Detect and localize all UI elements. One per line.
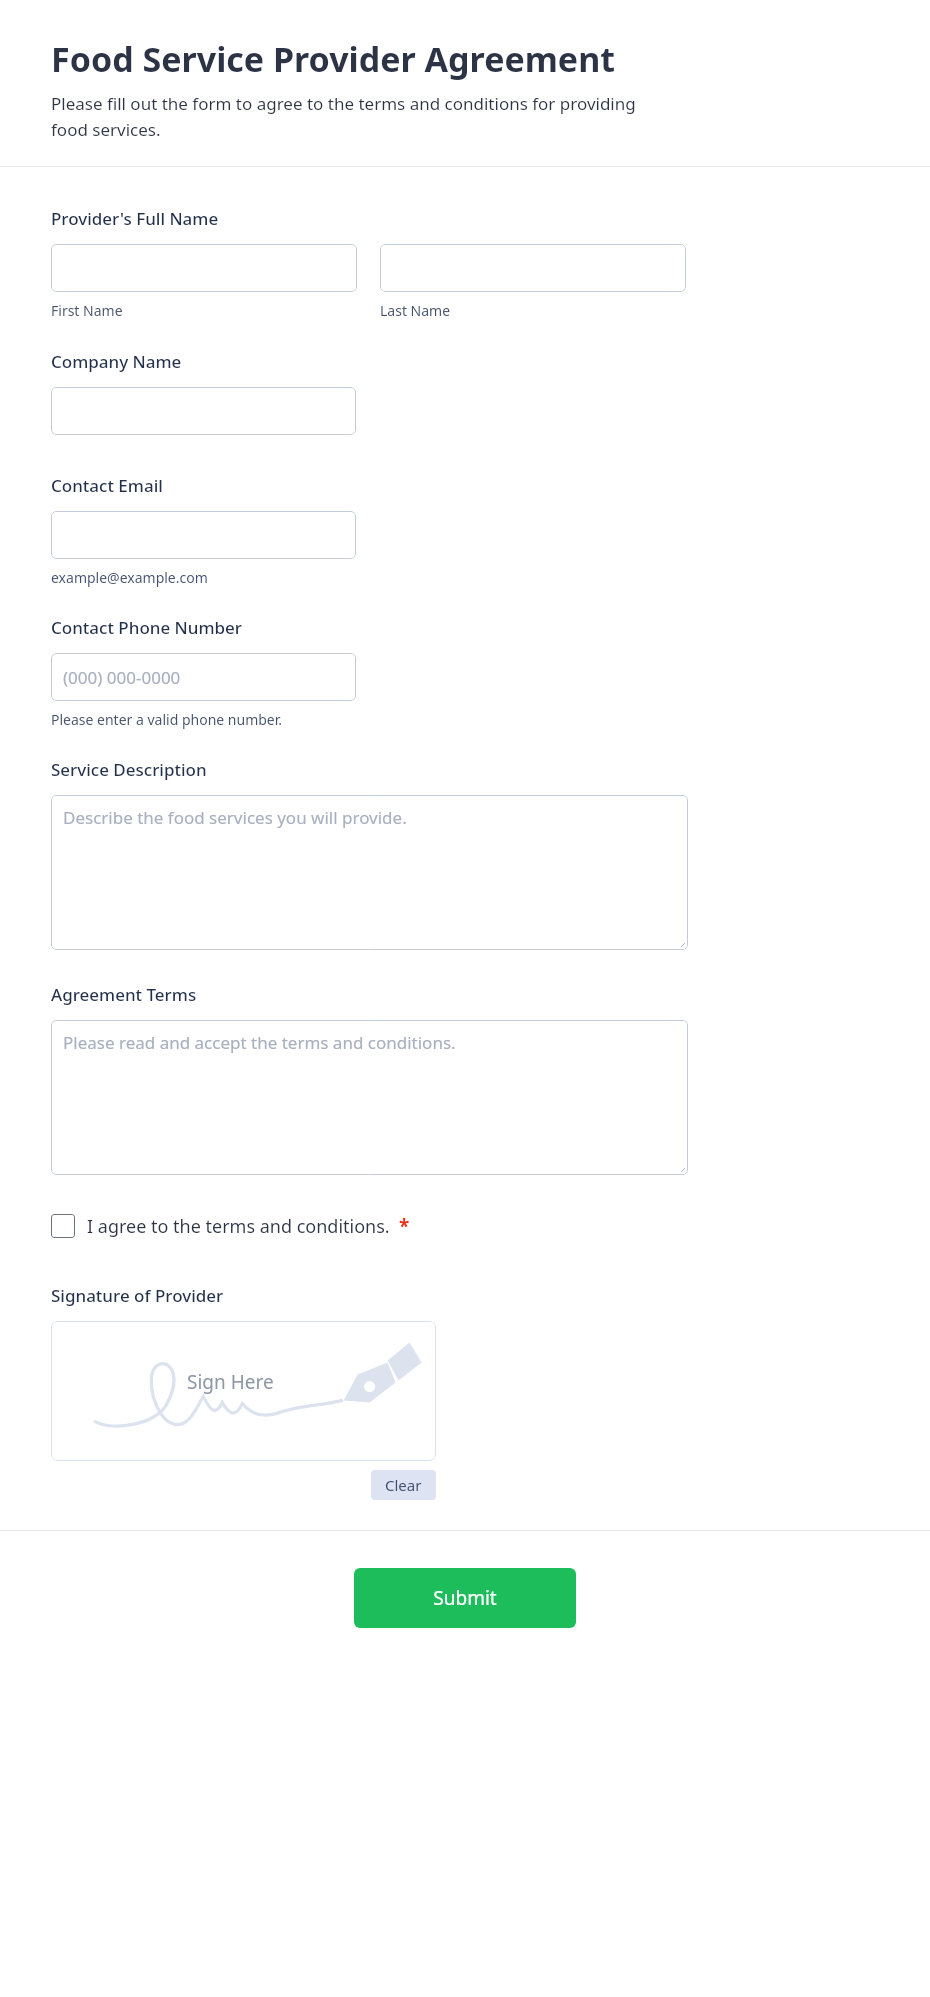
button[interactable]: I agree to the terms and conditions. <box>51 1213 410 1239</box>
staticText: Last Name <box>380 301 451 320</box>
button[interactable]: Clear <box>371 1470 436 1500</box>
staticText: * <box>399 1213 410 1239</box>
staticText: Describe the food services you will prov… <box>63 806 407 829</box>
button[interactable] <box>51 511 356 559</box>
staticText: Agreement Terms <box>51 983 197 1006</box>
button[interactable]: (000) 000-0000 <box>51 653 356 701</box>
staticText: Service Description <box>51 758 207 781</box>
staticText: Provider's Full Name <box>51 207 219 230</box>
button[interactable] <box>380 244 686 292</box>
staticText: Submit <box>433 1585 497 1611</box>
staticText: Contact Email <box>51 474 163 497</box>
button[interactable]: Submit <box>354 1568 576 1628</box>
staticText: Food Service Provider Agreement <box>51 36 616 82</box>
button[interactable]: Please read and accept the terms and con… <box>51 1020 688 1175</box>
button[interactable] <box>51 387 356 435</box>
staticText: Signature of Provider <box>51 1284 224 1307</box>
button[interactable] <box>51 244 357 292</box>
staticText: (000) 000-0000 <box>63 666 181 689</box>
staticText: Please fill out the form to agree to the… <box>51 92 641 141</box>
staticText: Sign Here <box>187 1369 274 1395</box>
staticText: I agree to the terms and conditions. <box>87 1214 390 1239</box>
staticText: Company Name <box>51 350 182 373</box>
staticText: example@example.com <box>51 568 208 587</box>
staticText: Clear <box>385 1475 422 1495</box>
staticText: Please read and accept the terms and con… <box>63 1031 456 1054</box>
button[interactable]: Describe the food services you will prov… <box>51 795 688 950</box>
staticText: Contact Phone Number <box>51 616 243 639</box>
button[interactable]: Signature pad, sign here <box>51 1321 436 1461</box>
staticText: Please enter a valid phone number. <box>51 710 283 729</box>
staticText: First Name <box>51 301 123 320</box>
